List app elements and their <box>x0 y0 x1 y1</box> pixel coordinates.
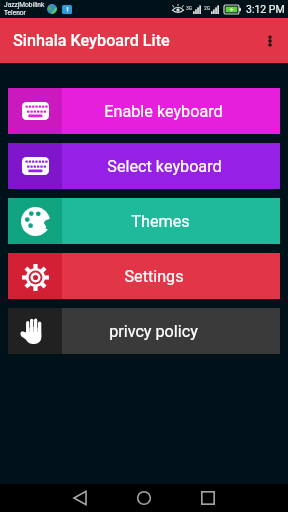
staticText: 3:12 PM <box>246 3 285 15</box>
button[interactable]: Back <box>58 484 102 512</box>
staticText: Themes <box>131 212 190 231</box>
staticText: Settings <box>124 267 184 286</box>
button[interactable]: More options <box>252 23 288 59</box>
button[interactable]: Home <box>122 484 166 512</box>
staticText: 3G <box>186 5 193 11</box>
staticText: Telenor <box>4 9 26 17</box>
button[interactable]: Settings <box>8 253 280 299</box>
button[interactable]: Recent apps <box>186 484 230 512</box>
button[interactable]: Select keyboard <box>8 143 280 189</box>
button[interactable]: Themes <box>8 198 280 244</box>
staticText: JazzjMobilink <box>4 1 45 9</box>
button[interactable]: Enable keyboard <box>8 88 280 134</box>
staticText: privcy policy <box>109 322 198 341</box>
staticText: Enable keyboard <box>104 102 223 121</box>
staticText: Sinhala Keyboard Lite <box>13 31 170 50</box>
staticText: 2G <box>204 5 211 11</box>
button[interactable]: privcy policy <box>8 308 280 354</box>
staticText: Select keyboard <box>107 157 222 176</box>
